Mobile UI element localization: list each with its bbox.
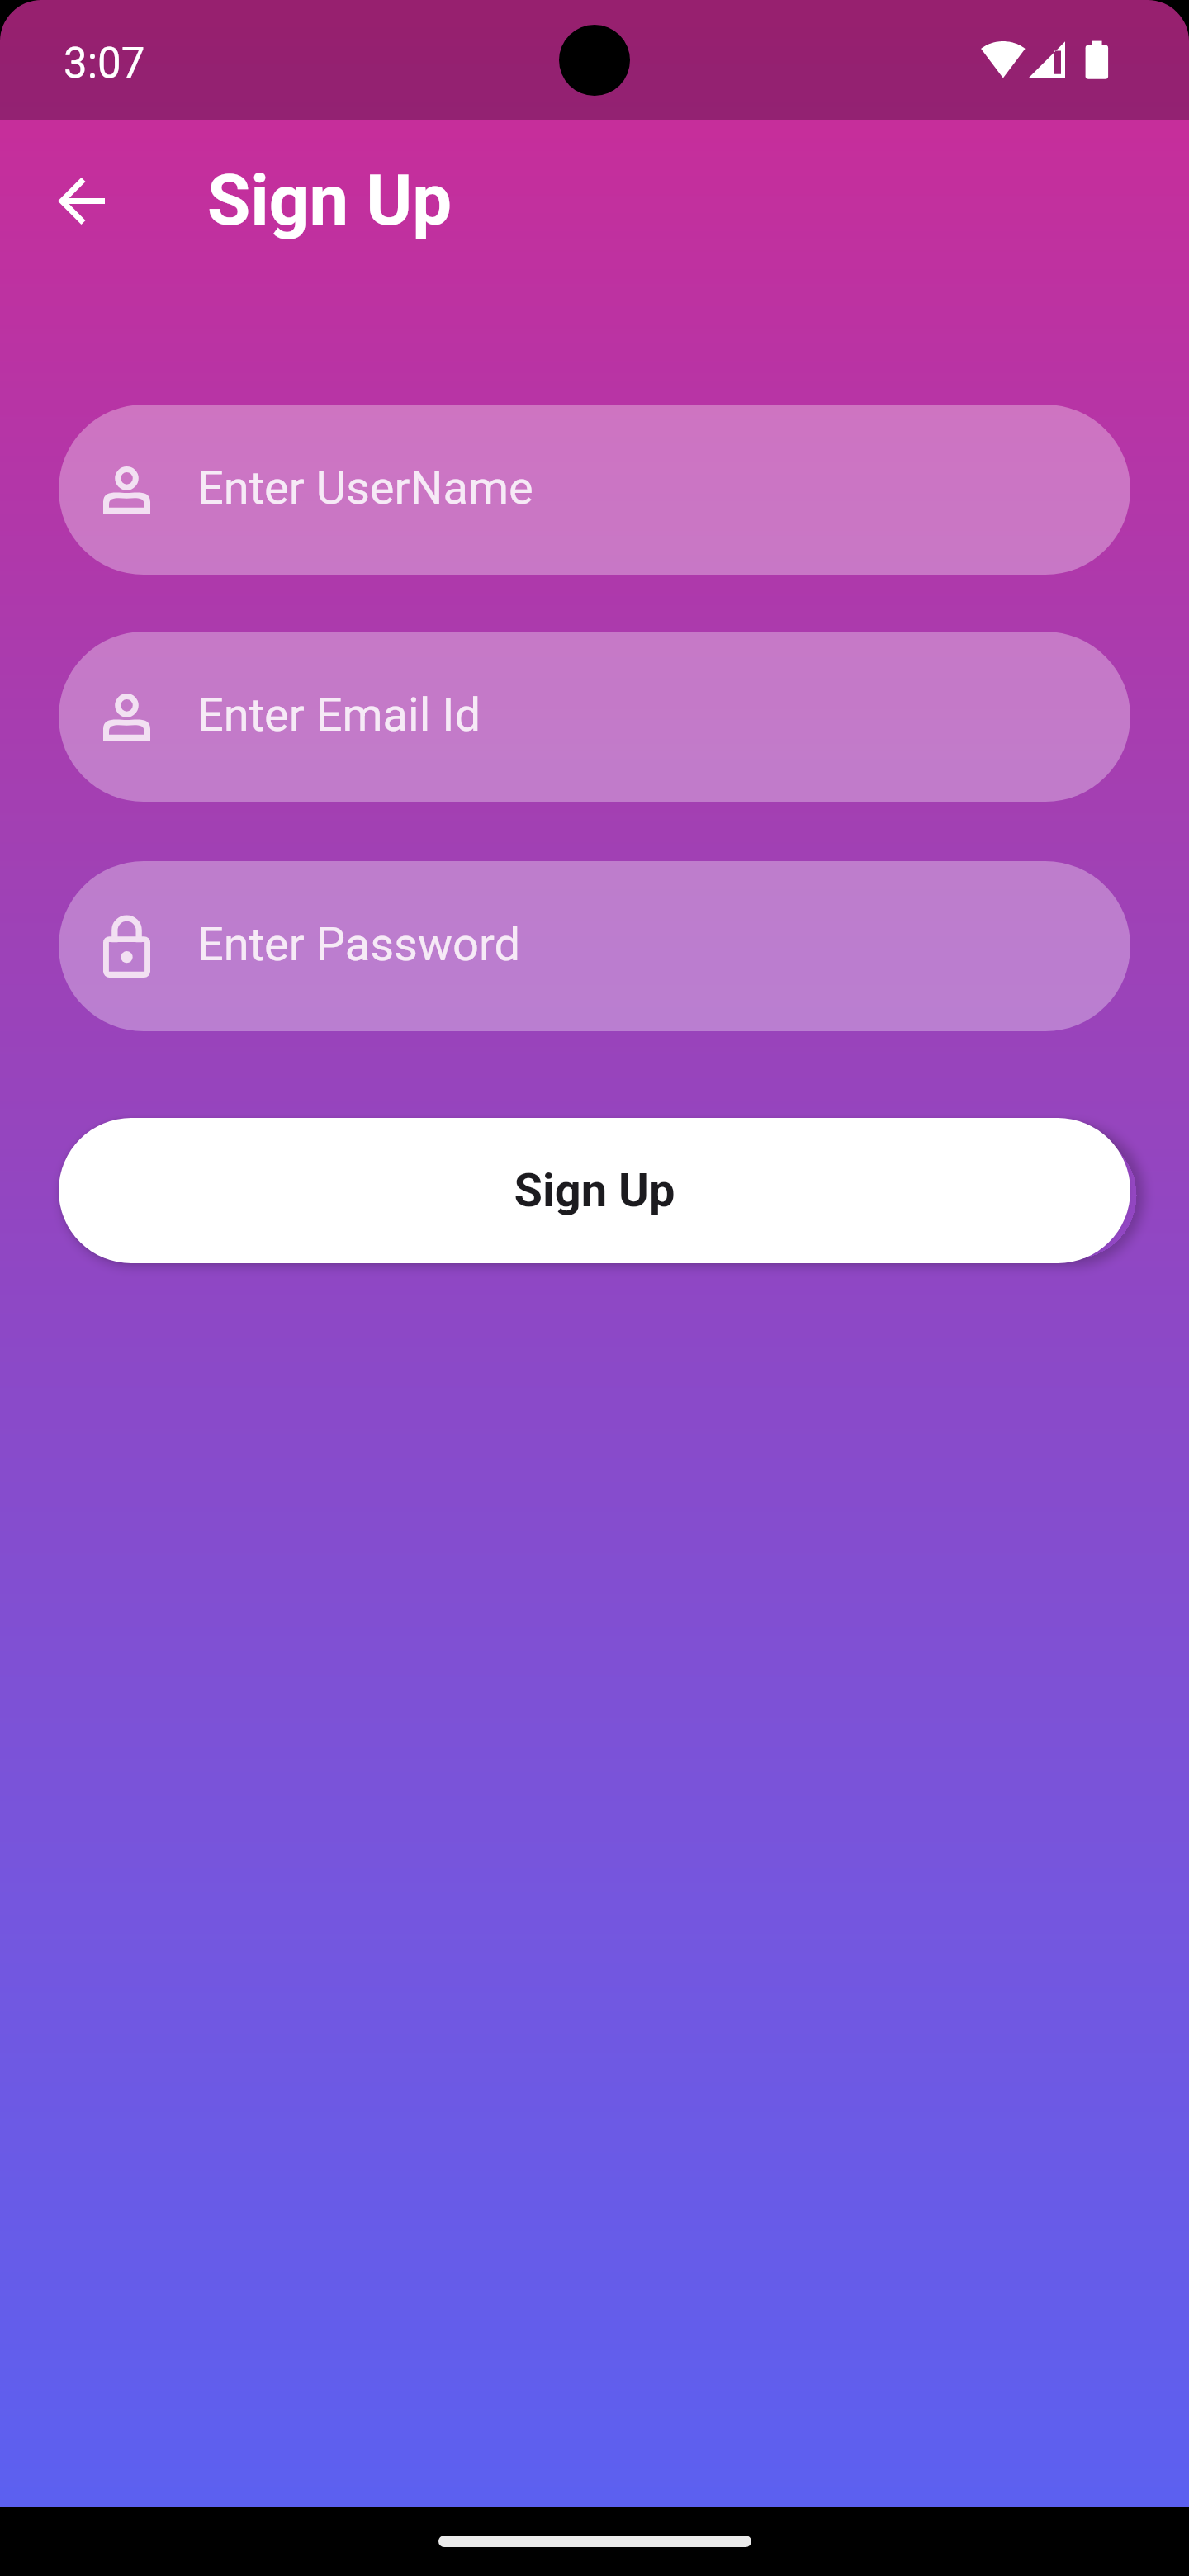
- button[interactable]: Sign Up: [59, 1118, 1130, 1263]
- staticText: 3:07: [64, 39, 145, 88]
- button[interactable]: Enter Email Id: [59, 632, 1130, 802]
- staticText: Enter Email Id: [197, 688, 481, 742]
- button[interactable]: Back: [40, 160, 121, 241]
- staticText: Enter Password: [197, 917, 520, 972]
- staticText: Sign Up: [207, 159, 452, 242]
- button[interactable]: Enter Password: [59, 861, 1130, 1031]
- staticText: Sign Up: [514, 1163, 675, 1218]
- staticText: Enter UserName: [197, 461, 533, 515]
- button[interactable]: Enter UserName: [59, 405, 1130, 575]
